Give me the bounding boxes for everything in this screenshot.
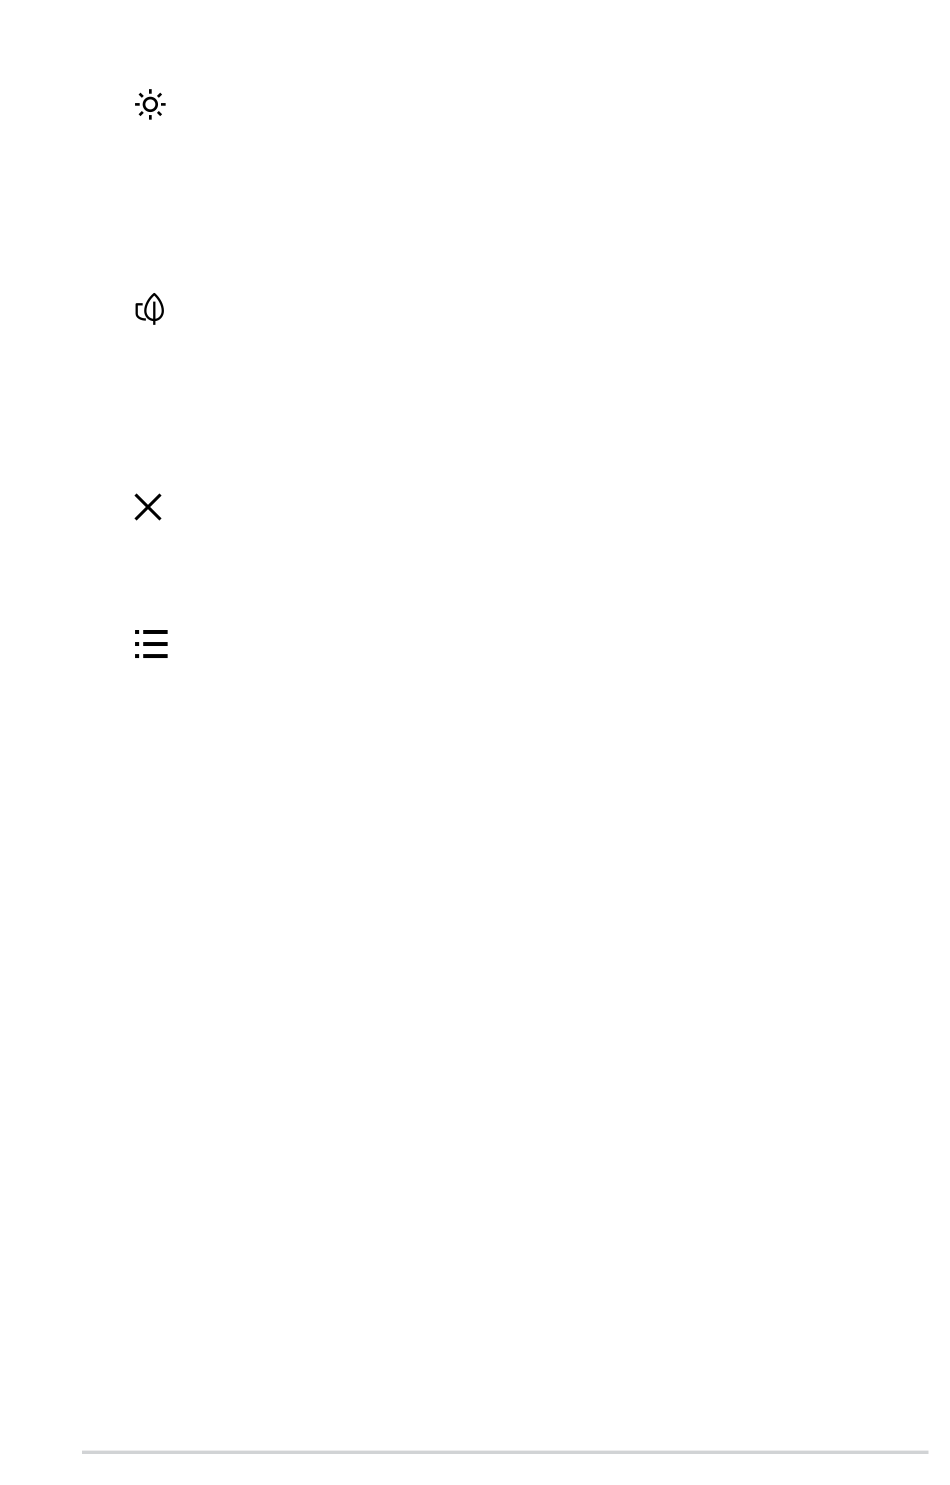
button[interactable]: Low Power Mode [0, 207, 950, 408]
button[interactable]: Brightness [0, 0, 950, 207]
button[interactable]: Close [0, 408, 950, 575]
button[interactable]: List [0, 575, 950, 712]
